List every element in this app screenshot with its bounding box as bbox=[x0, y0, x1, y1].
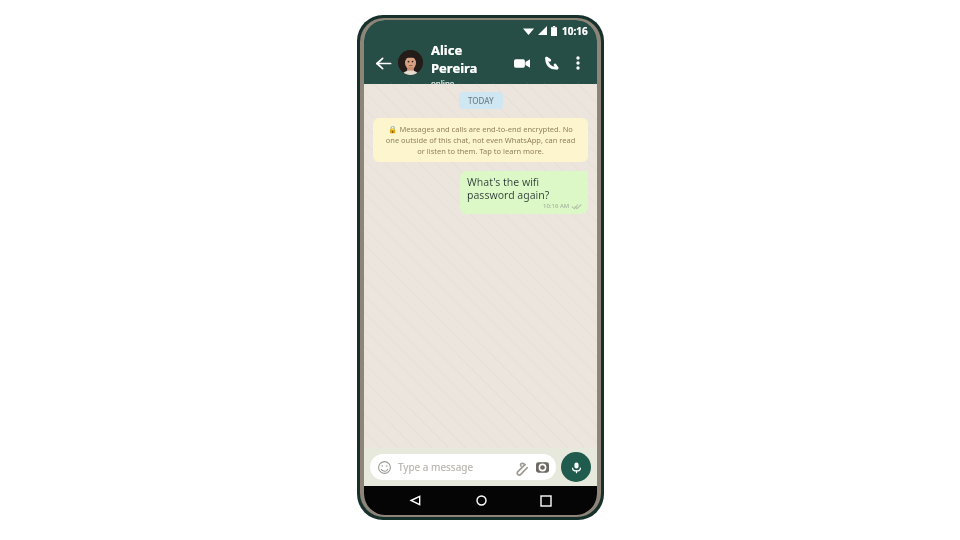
button[interactable]: Back bbox=[400, 486, 430, 515]
button[interactable]: Emoji bbox=[370, 454, 556, 480]
staticText: Alice Pereira bbox=[431, 41, 509, 77]
button[interactable]: Back bbox=[371, 51, 395, 75]
button[interactable]: Video call bbox=[509, 50, 535, 76]
staticText: Type a message bbox=[398, 460, 513, 474]
staticText: 10:16 bbox=[562, 24, 588, 38]
button[interactable]: More options bbox=[567, 52, 589, 74]
button[interactable]: What's the wifi password again? bbox=[460, 171, 588, 214]
button[interactable]: Camera bbox=[535, 460, 549, 474]
button[interactable]: Recents bbox=[531, 486, 561, 515]
button[interactable]: TODAY bbox=[459, 92, 503, 109]
button[interactable]: Voice call bbox=[539, 50, 565, 76]
staticText: 🔒 Messages and calls are end-to-end encr… bbox=[383, 124, 578, 156]
button[interactable]: Attach bbox=[513, 460, 528, 475]
button[interactable]: 🔒 Messages and calls are end-to-end encr… bbox=[373, 118, 588, 162]
button[interactable]: Record voice message bbox=[561, 452, 591, 482]
staticText: What's the wifi password again? bbox=[467, 175, 581, 202]
staticText: TODAY bbox=[468, 95, 494, 106]
other: Emoji bbox=[377, 460, 391, 474]
button[interactable]: Home bbox=[466, 486, 496, 515]
staticText: online bbox=[431, 78, 455, 84]
staticText: 10:16 AM bbox=[543, 202, 570, 210]
button[interactable]: Alice Pereira bbox=[398, 41, 509, 84]
